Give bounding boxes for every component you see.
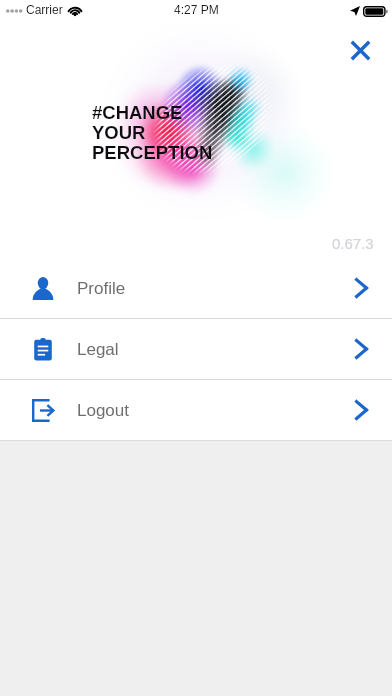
staticText: YOUR xyxy=(92,123,146,143)
staticText: PERCEPTION xyxy=(92,143,213,163)
staticText: Carrier xyxy=(26,3,63,16)
button[interactable]: Close xyxy=(341,31,379,69)
staticText: #CHANGE xyxy=(92,103,183,123)
button[interactable]: Logout xyxy=(0,380,392,440)
staticText: 4:27 PM xyxy=(174,3,219,16)
staticText: Legal xyxy=(77,340,119,359)
staticText: Logout xyxy=(77,401,129,420)
staticText: Profile xyxy=(77,279,126,298)
button[interactable]: Profile xyxy=(0,258,392,318)
staticText: 0.67.3 xyxy=(332,235,374,252)
button[interactable]: Legal xyxy=(0,319,392,379)
